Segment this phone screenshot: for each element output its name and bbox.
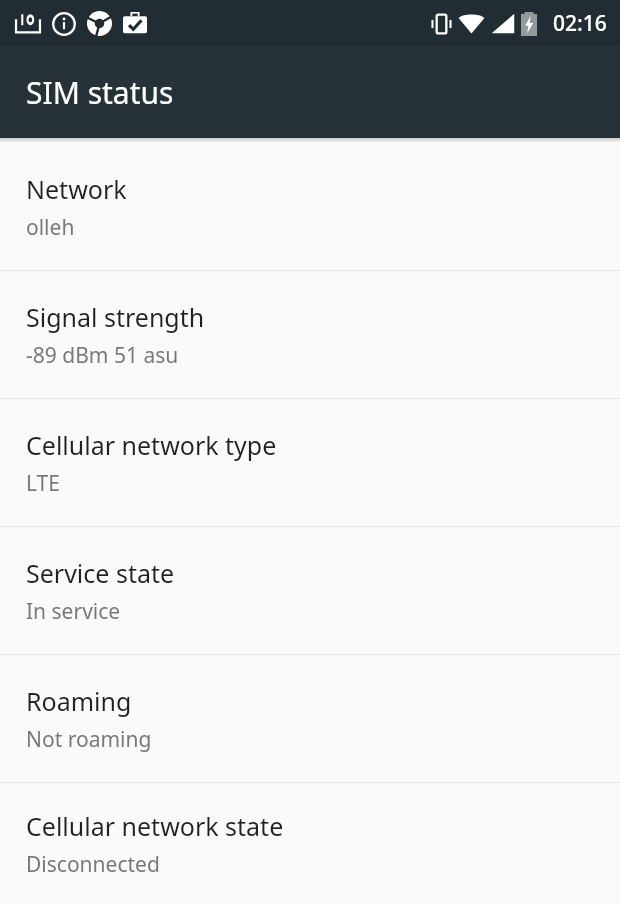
staticText: Cellular network state: [26, 809, 284, 843]
staticText: In service: [26, 597, 121, 626]
staticText: Disconnected: [26, 850, 160, 879]
button[interactable]: SIM status title bar: [0, 46, 620, 138]
button[interactable]: Network: [0, 143, 620, 270]
staticText: LTE: [26, 469, 60, 498]
staticText: Not roaming: [26, 725, 152, 754]
staticText: Service state: [26, 556, 175, 590]
staticText: 02:16: [553, 9, 607, 38]
button[interactable]: Signal strength: [0, 271, 620, 398]
staticText: -89 dBm 51 asu: [26, 341, 179, 370]
button[interactable]: Cellular network type: [0, 399, 620, 526]
staticText: SIM status: [26, 72, 174, 113]
staticText: Roaming: [26, 684, 132, 718]
button[interactable]: Service state: [0, 527, 620, 654]
staticText: olleh: [26, 213, 75, 242]
staticText: Signal strength: [26, 300, 205, 334]
button[interactable]: Cellular network state: [0, 783, 620, 904]
staticText: Cellular network type: [26, 428, 277, 462]
staticText: Network: [26, 172, 127, 206]
button[interactable]: Roaming: [0, 655, 620, 782]
